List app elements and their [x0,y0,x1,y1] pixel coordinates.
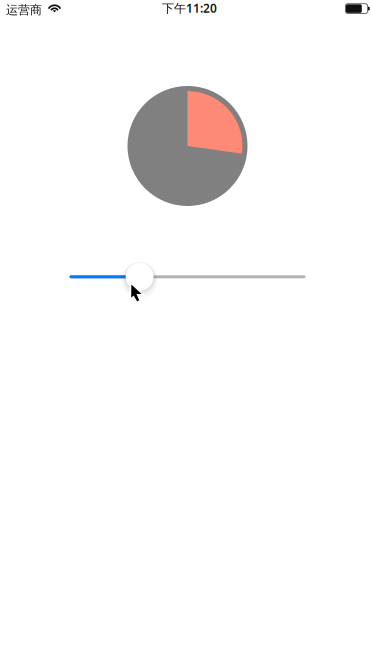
staticText: 下午11:20 [162,0,217,16]
button[interactable]: Chart value slider [69,262,305,308]
staticText: 运营商 [6,2,42,17]
